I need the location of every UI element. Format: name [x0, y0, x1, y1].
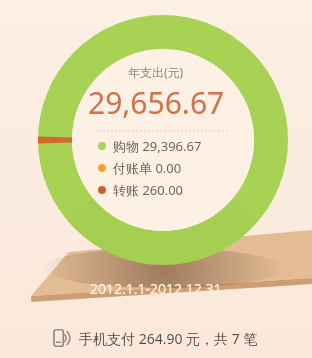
staticText: 转账 260.00: [113, 181, 184, 199]
staticText: 29,656.67: [88, 82, 225, 123]
staticText: 年支出(元): [128, 64, 184, 80]
button[interactable]: 购物 29,396.67: [98, 137, 202, 155]
button[interactable]: 付账单 0.00: [98, 159, 182, 177]
staticText: 付账单 0.00: [113, 159, 182, 177]
staticText: 手机支付 264.90 元，共 7 笔: [79, 329, 258, 348]
other: Mobile payment: [54, 328, 76, 348]
staticText: 2012.1.1-2012.12.31: [90, 279, 222, 298]
button[interactable]: 转账 260.00: [98, 181, 184, 199]
staticText: 购物 29,396.67: [113, 137, 202, 155]
button[interactable]: Mobile payment: [54, 328, 258, 348]
